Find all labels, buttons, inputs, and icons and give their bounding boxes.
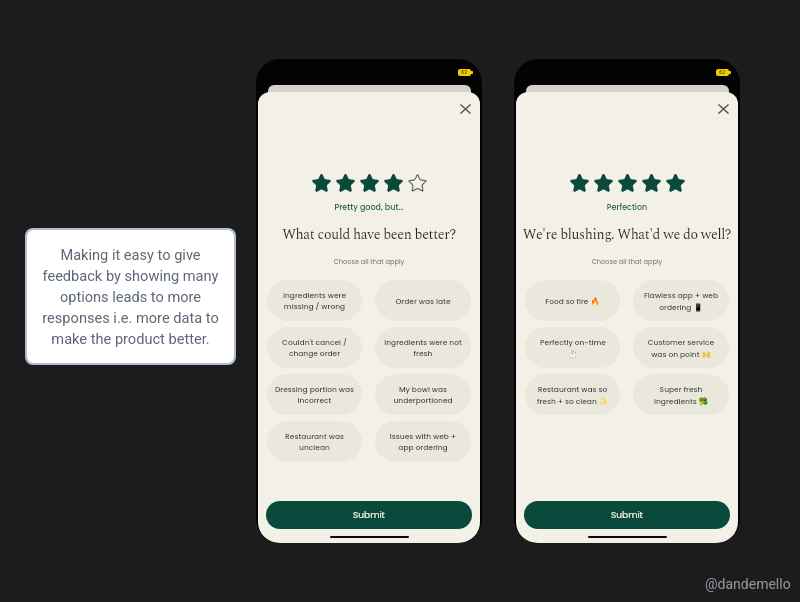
button[interactable]: Ingredients were missing / wrong (267, 280, 362, 321)
staticText: Restaurant was so fresh + so clean ✨ (532, 384, 613, 406)
staticText: My bowl was underportioned (382, 384, 464, 406)
staticText: Choose all that apply (516, 257, 738, 266)
staticText: Perfection (516, 202, 738, 213)
button[interactable]: Food so fire 🔥 (525, 280, 620, 321)
staticText: 62 (719, 69, 726, 76)
button[interactable]: Restaurant was so fresh + so clean ✨ (525, 374, 620, 415)
button[interactable]: Customer service was on point 🙌 (633, 327, 729, 368)
staticText: Issues with web + app ordering (382, 431, 464, 453)
staticText: Choose all that apply (258, 257, 480, 266)
staticText: Making it easy to give feedback by showi… (40, 246, 221, 347)
staticText: @dandemello (705, 576, 791, 592)
staticText: Order was late (395, 296, 451, 306)
staticText: 62 (461, 69, 468, 76)
staticText: Restaurant was unclean (274, 431, 355, 453)
staticText: What could have been better? (262, 224, 476, 245)
button[interactable]: Perfectly on-time ⏱️ (525, 327, 620, 368)
staticText: Ingredients were not fresh (382, 337, 464, 359)
button[interactable]: Close (712, 98, 734, 120)
staticText: Pretty good, but… (258, 202, 480, 213)
staticText: Perfectly on-time ⏱️ (540, 337, 606, 359)
button[interactable]: Super fresh ingredients 🥦 (633, 374, 729, 415)
button[interactable]: Submit (524, 501, 730, 529)
button[interactable]: Order was late (375, 280, 471, 321)
button[interactable]: Making it easy to give feedback by showi… (27, 230, 234, 363)
button[interactable]: Couldn't cancel / change order (267, 327, 362, 368)
staticText: Dressing portion was incorrect (274, 384, 355, 406)
staticText: Submit (611, 509, 643, 522)
staticText: Super fresh ingredients 🥦 (640, 384, 722, 406)
staticText: We're blushing. What'd we do well? (520, 224, 734, 245)
button[interactable]: Restaurant was unclean (267, 421, 362, 462)
button[interactable]: Ingredients were not fresh (375, 327, 471, 368)
button[interactable]: Issues with web + app ordering (375, 421, 471, 462)
staticText: Flawless app + web ordering 📱 (640, 290, 722, 312)
staticText: Customer service was on point 🙌 (640, 337, 722, 359)
button[interactable]: Close (454, 98, 476, 120)
staticText: Ingredients were missing / wrong (274, 290, 355, 312)
button[interactable]: Submit (266, 501, 472, 529)
button[interactable]: Dressing portion was incorrect (267, 374, 362, 415)
staticText: Food so fire 🔥 (545, 296, 600, 306)
staticText: Submit (353, 509, 385, 522)
staticText: Couldn't cancel / change order (274, 337, 355, 359)
button[interactable]: My bowl was underportioned (375, 374, 471, 415)
button[interactable]: Flawless app + web ordering 📱 (633, 280, 729, 321)
